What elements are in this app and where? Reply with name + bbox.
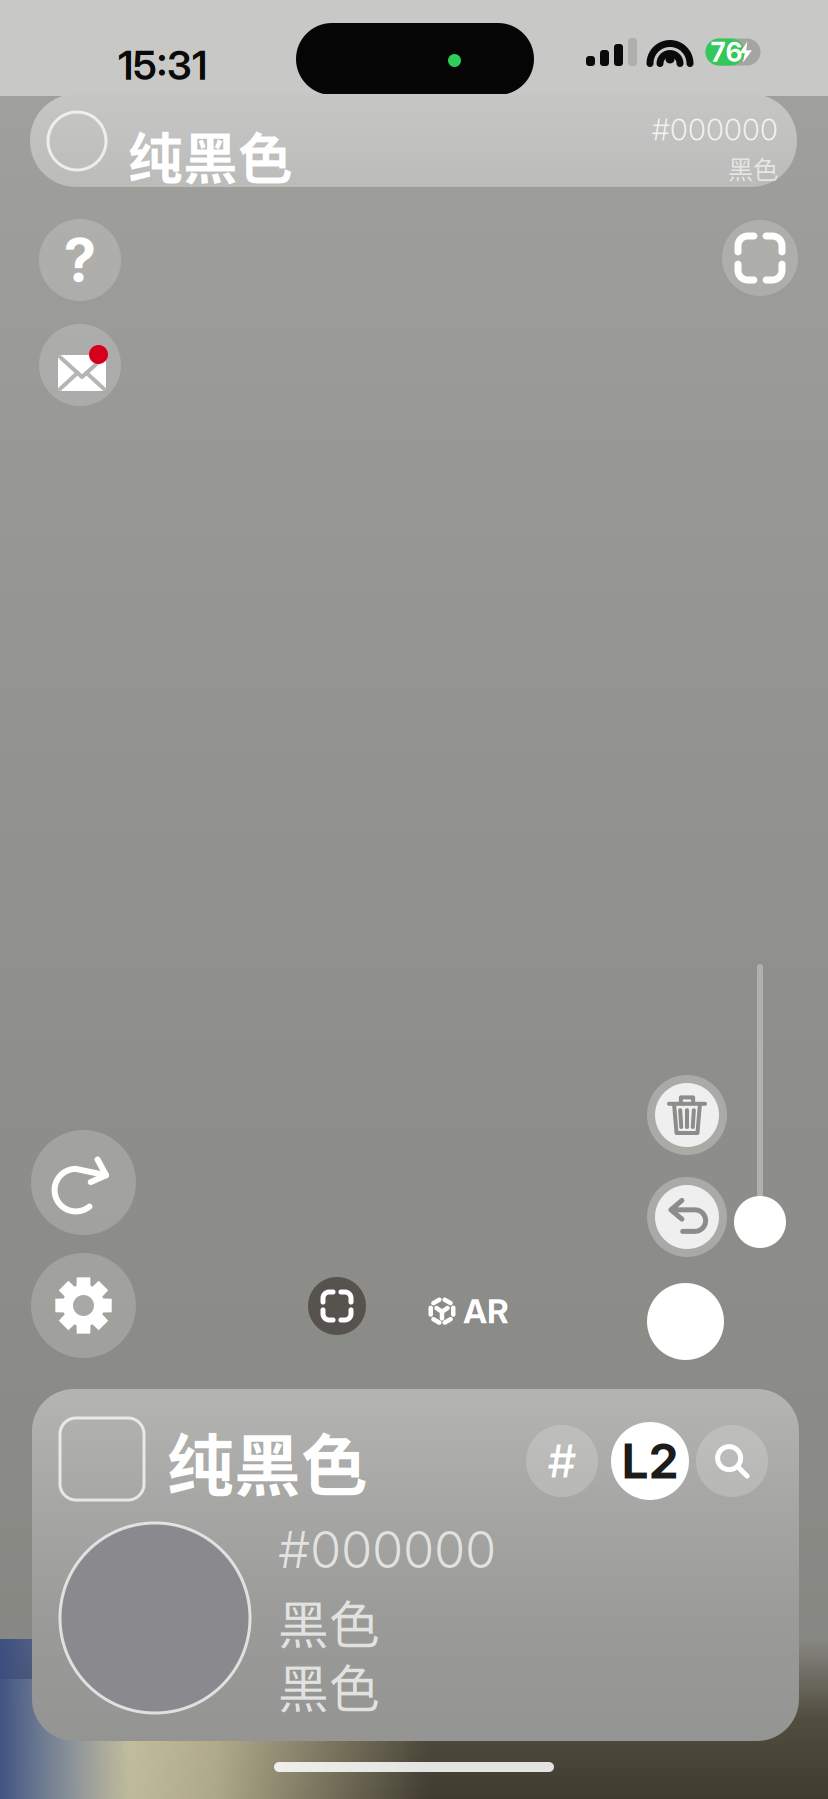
staticText: AR	[463, 1291, 509, 1331]
button[interactable]: Reload	[31, 1130, 136, 1235]
button[interactable]: Help	[39, 219, 121, 301]
button[interactable]: Messages	[39, 324, 121, 406]
button[interactable]: Shutter	[647, 1283, 724, 1360]
button[interactable]: Delete	[647, 1075, 727, 1155]
button[interactable]: L2	[611, 1422, 689, 1500]
button[interactable]: Undo	[647, 1177, 727, 1257]
button[interactable]: Capture	[308, 1277, 366, 1335]
staticText: 黑色	[728, 149, 778, 186]
staticText: L2	[621, 1432, 678, 1490]
button[interactable]: Hex	[526, 1425, 598, 1497]
button[interactable]: 纯黑色	[30, 94, 797, 187]
staticText: 纯黑色	[128, 115, 293, 194]
staticText: #000000	[278, 1519, 496, 1580]
staticText: 黑色	[278, 1585, 380, 1658]
staticText: 15:31	[118, 41, 207, 89]
staticText: 黑色	[278, 1649, 380, 1722]
staticText: #000000	[652, 112, 778, 147]
staticText: ?	[63, 224, 96, 295]
button[interactable]: Scan	[722, 220, 798, 296]
staticText: 纯黑色	[167, 1413, 368, 1509]
staticText: #	[547, 1434, 576, 1488]
staticText: 76	[710, 36, 742, 68]
button[interactable]: AR	[429, 1291, 509, 1331]
button[interactable]: Settings	[31, 1253, 136, 1358]
button[interactable]: Search	[696, 1425, 768, 1497]
